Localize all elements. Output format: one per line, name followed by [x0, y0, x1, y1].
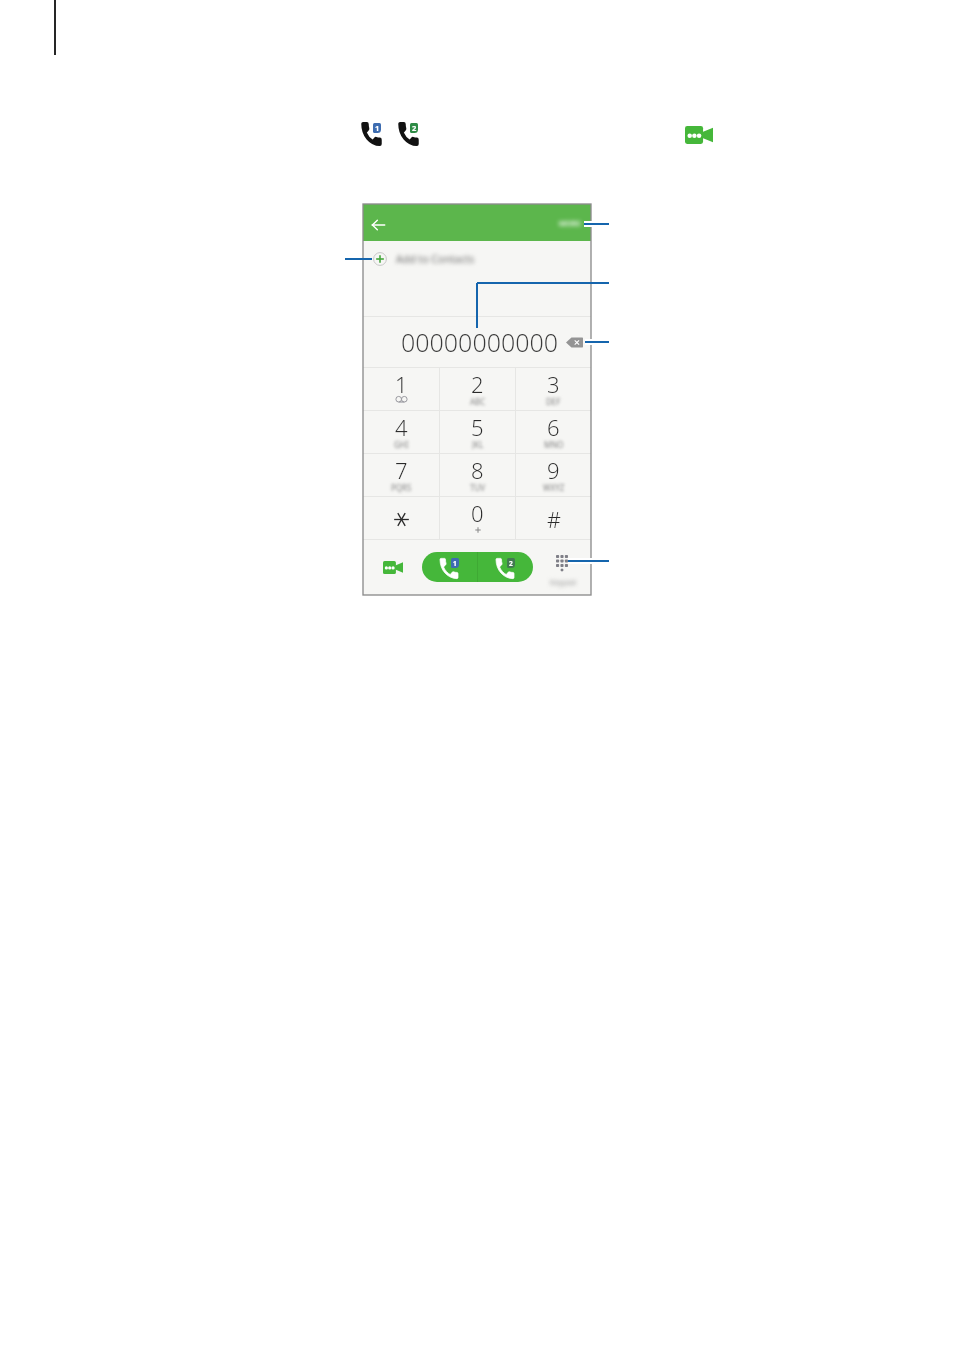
button[interactable]: Call SIM 2: [478, 552, 533, 582]
staticText: 00000000000: [401, 325, 559, 359]
button[interactable]: 4: [363, 411, 439, 453]
button[interactable]: Video call: [383, 561, 403, 574]
staticText: 0: [471, 498, 484, 528]
staticText: 2: [412, 123, 417, 133]
staticText: 3: [547, 369, 560, 399]
button[interactable]: Keypad: [556, 555, 568, 572]
staticText: #: [547, 505, 561, 534]
staticText: Add to Contacts: [396, 252, 475, 266]
button[interactable]: 2: [440, 368, 515, 410]
staticText: Keypad: [550, 577, 576, 587]
staticText: 1: [375, 123, 380, 133]
button[interactable]: More options: [555, 216, 585, 229]
button[interactable]: Backspace: [566, 337, 583, 348]
button[interactable]: 8: [440, 454, 515, 496]
staticText: 8: [471, 455, 484, 485]
button[interactable]: #: [516, 497, 591, 539]
staticText: MNO: [544, 439, 564, 450]
staticText: 2: [509, 559, 513, 568]
staticText: 1: [395, 369, 408, 399]
staticText: DEF: [546, 396, 561, 407]
button[interactable]: 7: [363, 454, 439, 496]
button[interactable]: Add to Contacts: [363, 241, 591, 277]
button[interactable]: Call SIM 1: [422, 552, 477, 582]
staticText: 5: [471, 412, 484, 442]
staticText: JKL: [472, 439, 484, 450]
staticText: 7: [395, 455, 408, 485]
button[interactable]: Back: [370, 217, 386, 233]
staticText: MORE: [559, 218, 581, 228]
staticText: 1: [453, 559, 457, 568]
button[interactable]: 9: [516, 454, 591, 496]
button[interactable]: 3: [516, 368, 591, 410]
staticText: WXYZ: [543, 482, 565, 493]
staticText: 9: [547, 455, 560, 485]
button[interactable]: 1: [363, 368, 439, 410]
staticText: PQRS: [391, 482, 412, 493]
staticText: GHI: [394, 439, 409, 450]
staticText: 4: [395, 412, 408, 442]
button[interactable]: 5: [440, 411, 515, 453]
staticText: TUV: [470, 482, 486, 493]
staticText: 6: [547, 412, 560, 442]
staticText: ABC: [470, 396, 486, 407]
staticText: 2: [471, 369, 484, 399]
button[interactable]: 0: [440, 497, 515, 539]
button[interactable]: [363, 497, 439, 539]
button[interactable]: 6: [516, 411, 591, 453]
